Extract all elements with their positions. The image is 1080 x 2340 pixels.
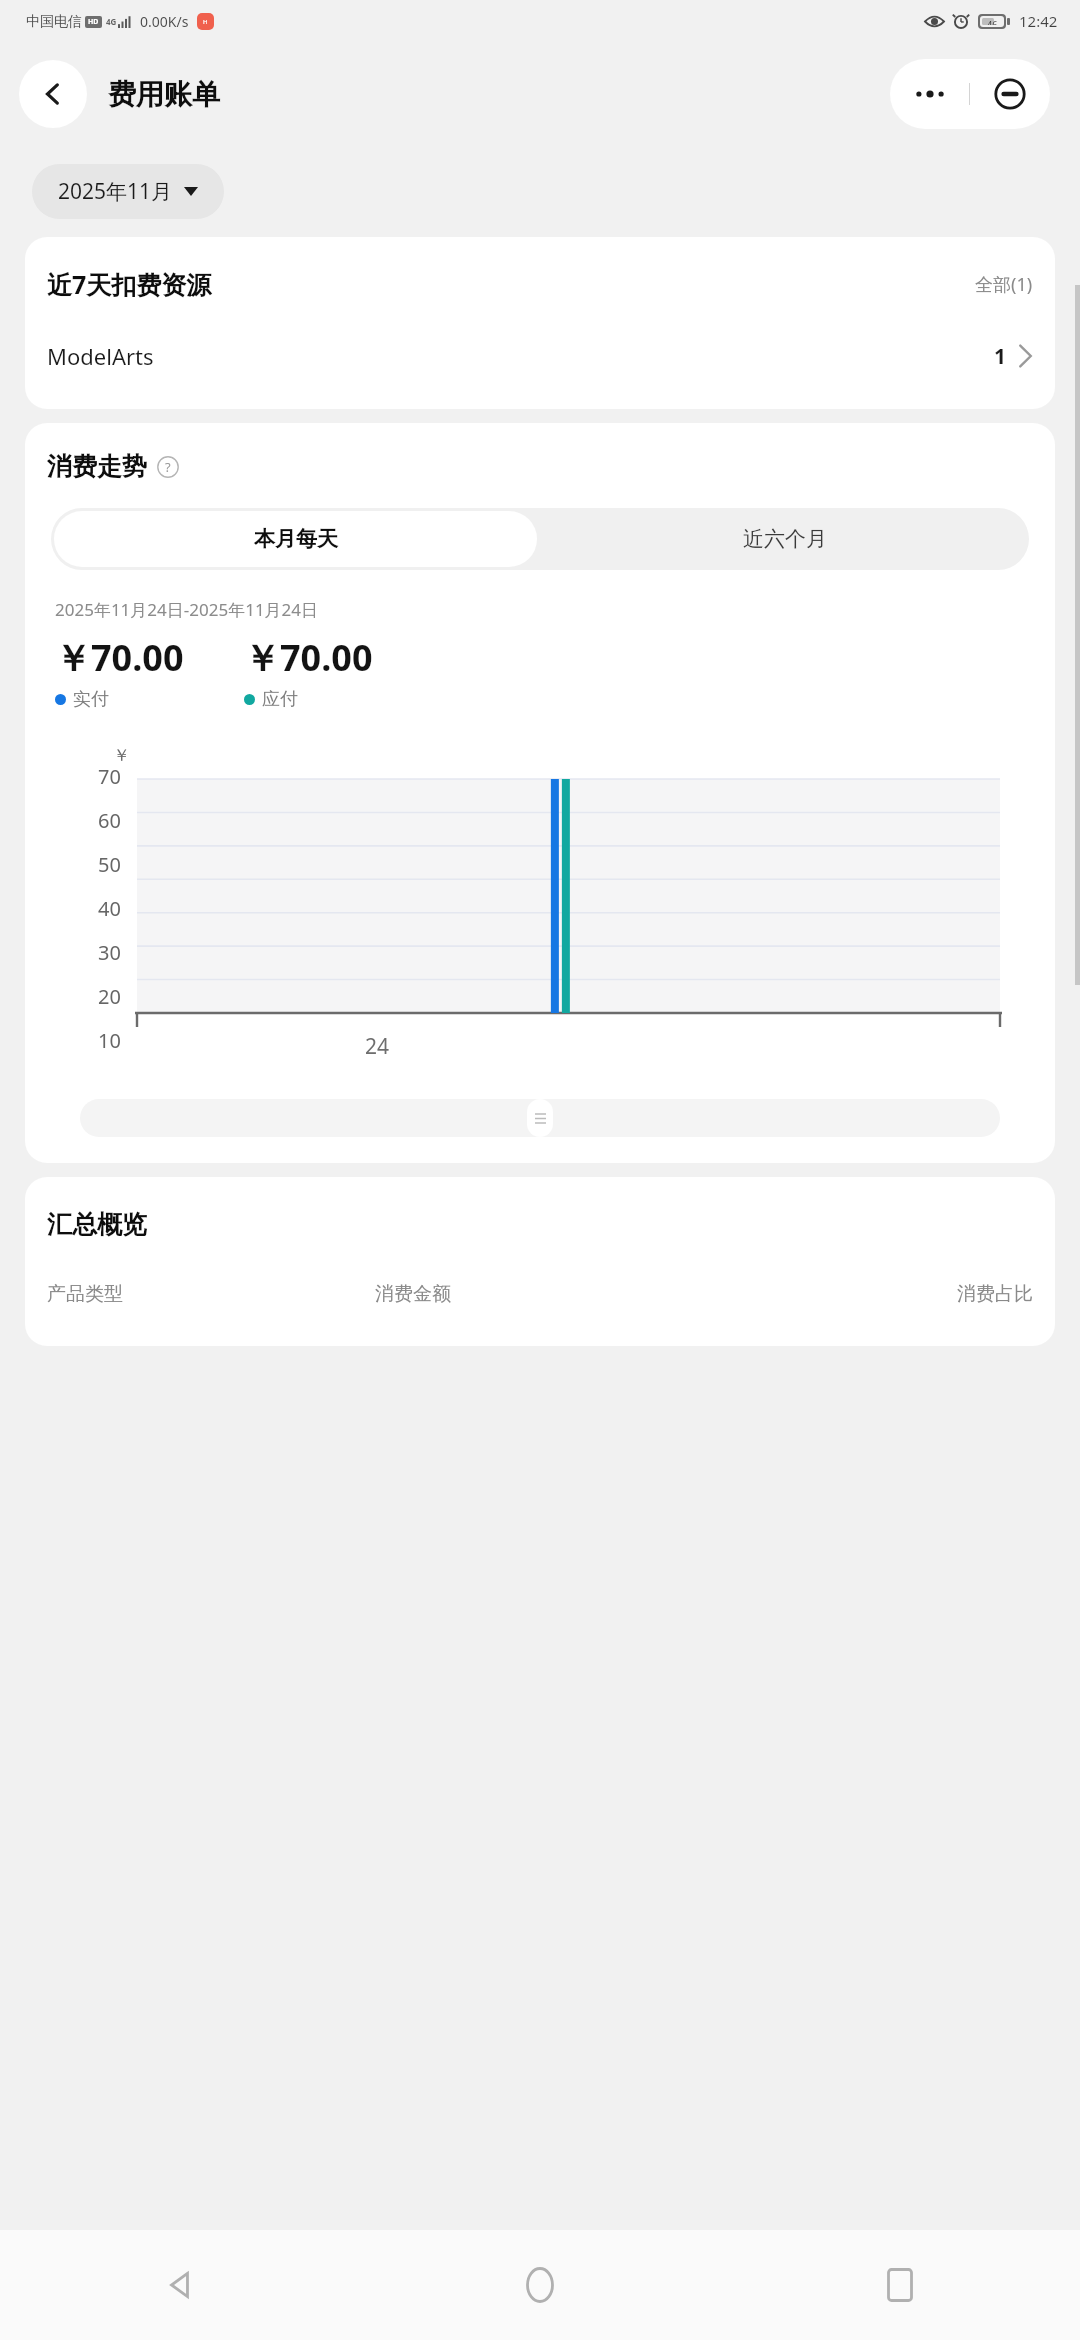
staticText: 30	[25, 939, 121, 966]
button[interactable]: Recents	[720, 2230, 1080, 2340]
staticText: ￥70.00	[55, 633, 184, 682]
button[interactable]: Help	[157, 456, 179, 478]
button[interactable]: Home	[360, 2230, 720, 2340]
staticText: 消费走势	[47, 451, 147, 482]
staticText: HD	[88, 17, 99, 27]
staticText: 20	[25, 983, 121, 1010]
staticText: 46	[987, 18, 998, 25]
staticText: 2025年11月24日-2025年11月24日	[55, 598, 319, 621]
staticText: 近六个月	[743, 526, 827, 552]
staticText: 本月每天	[254, 526, 338, 552]
staticText: 1	[994, 342, 1007, 371]
staticText: 70	[25, 763, 121, 790]
staticText: 24	[365, 1032, 390, 1061]
staticText: 消费金额	[375, 1282, 704, 1306]
button[interactable]: More options	[890, 59, 969, 129]
staticText: 50	[25, 851, 121, 878]
button[interactable]: 全部(1)	[975, 272, 1033, 297]
staticText: 40	[25, 895, 121, 922]
staticText: 0.00K/s	[140, 12, 189, 31]
staticText: 费用账单	[108, 77, 220, 112]
staticText: 60	[25, 807, 121, 834]
staticText: 应付	[262, 688, 298, 711]
staticText: ?	[165, 458, 171, 476]
staticText: 产品类型	[47, 1282, 375, 1306]
staticText: H	[203, 18, 208, 26]
button[interactable]: 本月每天	[54, 511, 537, 567]
button[interactable]: ModelArts	[47, 341, 1033, 371]
staticText: ￥	[113, 745, 130, 766]
staticText: 10	[25, 1027, 121, 1054]
staticText: 汇总概览	[47, 1209, 147, 1240]
button[interactable]: Close	[970, 59, 1050, 129]
staticText: 12:42	[1019, 11, 1058, 31]
staticText: ModelArts	[47, 341, 154, 371]
staticText: 2025年11月	[58, 177, 173, 206]
button[interactable]: Back	[0, 2230, 360, 2340]
staticText: ￥70.00	[244, 633, 373, 682]
staticText: 消费占比	[704, 1282, 1033, 1306]
staticText: 中国电信	[26, 13, 82, 31]
button[interactable]: 近六个月	[540, 508, 1029, 570]
staticText: 4G	[106, 16, 117, 27]
staticText: 近7天扣费资源	[47, 267, 212, 301]
button[interactable]: Back	[19, 60, 87, 128]
staticText: 全部(1)	[975, 272, 1033, 297]
staticText: 实付	[73, 688, 109, 711]
button[interactable]: 2025年11月	[32, 164, 224, 219]
